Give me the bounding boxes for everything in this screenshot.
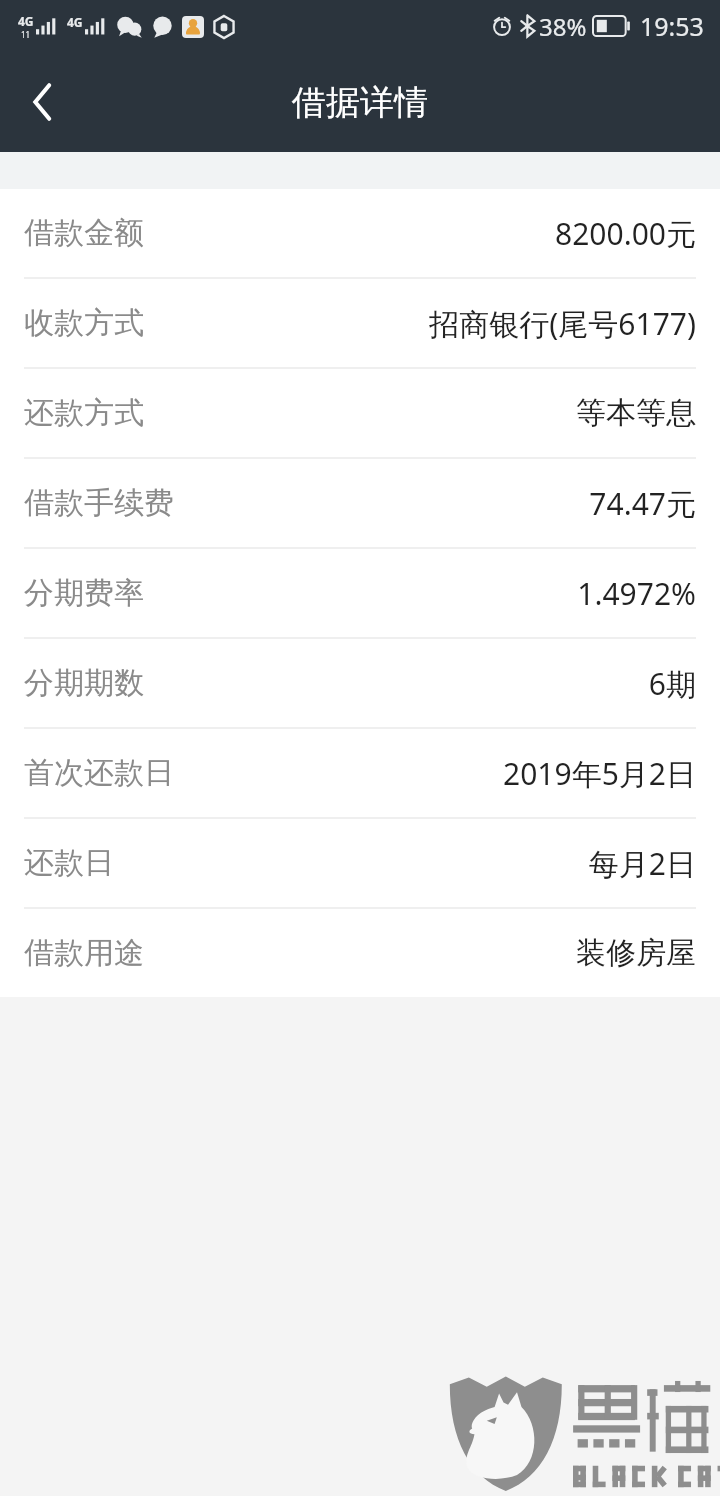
button[interactable]: 首次还款日	[0, 729, 720, 817]
button[interactable]: 还款方式	[0, 369, 720, 457]
staticText: 4G	[67, 14, 83, 30]
staticText: 11	[21, 29, 31, 40]
staticText: 38%	[539, 10, 587, 43]
staticText: 4G	[18, 13, 34, 29]
staticText: 74.47元	[589, 483, 696, 524]
staticText: 借款手续费	[24, 484, 174, 522]
button[interactable]: 还款日	[0, 819, 720, 907]
staticText: 装修房屋	[576, 934, 696, 972]
staticText: 19:53	[640, 9, 704, 43]
button[interactable]: 借款用途	[0, 909, 720, 997]
staticText: 借款金额	[24, 214, 144, 252]
staticText: 等本等息	[576, 394, 696, 432]
staticText: 还款日	[24, 844, 114, 882]
staticText: 还款方式	[24, 394, 144, 432]
staticText: 首次还款日	[24, 754, 174, 792]
button[interactable]: 借款手续费	[0, 459, 720, 547]
button[interactable]: 收款方式	[0, 279, 720, 367]
button[interactable]: 分期期数	[0, 639, 720, 727]
button[interactable]: 借款金额	[0, 189, 720, 277]
staticText: 招商银行(尾号6177)	[429, 303, 696, 344]
staticText: 分期期数	[24, 664, 144, 702]
button[interactable]: 返回	[0, 52, 84, 152]
staticText: 1.4972%	[577, 573, 696, 614]
staticText: 收款方式	[24, 304, 144, 342]
staticText: 分期费率	[24, 574, 144, 612]
staticText: 借款用途	[24, 934, 144, 972]
button[interactable]: 分期费率	[0, 549, 720, 637]
staticText: 6期	[648, 663, 696, 704]
staticText: 每月2日	[588, 843, 696, 884]
staticText: 2019年5月2日	[503, 753, 696, 794]
staticText: 借据详情	[292, 81, 428, 124]
staticText: 8200.00元	[555, 213, 696, 254]
